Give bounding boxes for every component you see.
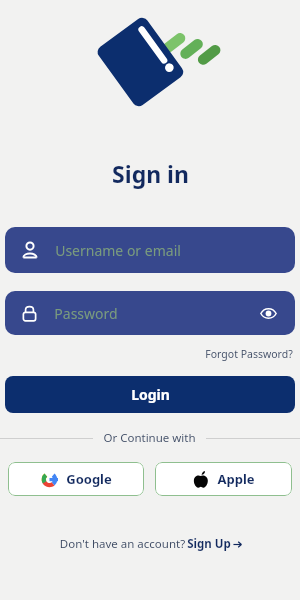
staticText: Don't have an account? — [58, 536, 187, 552]
staticText: Or Continue with — [103, 430, 196, 446]
staticText: Forgot Password? — [205, 347, 293, 361]
button[interactable]: Show password — [257, 302, 279, 324]
button[interactable]: Don't have an account? — [52, 532, 248, 556]
button[interactable]: Forgot Password? — [203, 345, 295, 363]
staticText: Google — [66, 470, 112, 488]
staticText: Sign in — [112, 158, 189, 189]
button[interactable]: Password — [5, 291, 295, 335]
button[interactable]: Google — [8, 462, 144, 496]
button[interactable]: Username or email — [5, 227, 295, 273]
staticText: Apple — [217, 470, 255, 488]
staticText: Username or email — [55, 241, 181, 260]
staticText: Password — [54, 304, 118, 323]
staticText: Login — [131, 385, 170, 404]
button[interactable]: Login — [5, 376, 295, 413]
button[interactable]: Apple — [155, 462, 292, 496]
staticText: Sign Up — [187, 536, 231, 552]
